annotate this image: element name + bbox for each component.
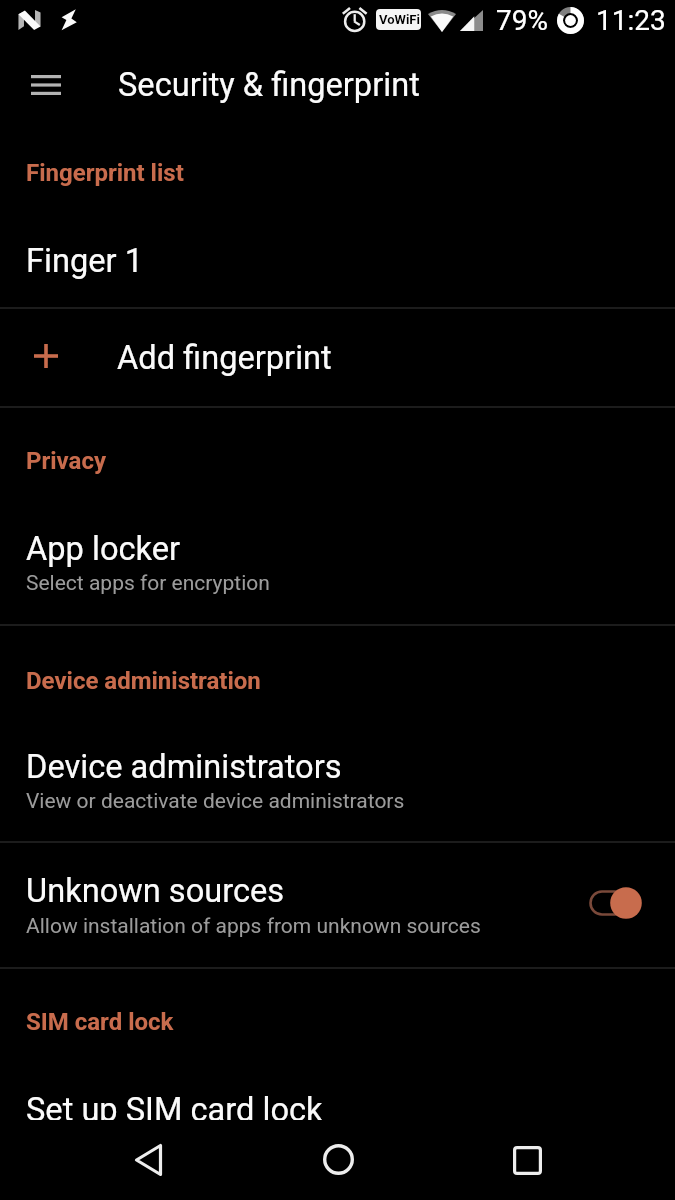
staticText: Select apps for encryption xyxy=(26,571,270,596)
staticText: Privacy xyxy=(26,447,107,475)
staticText: SIM card lock xyxy=(26,1008,174,1036)
staticText: Device administration xyxy=(26,667,261,695)
staticText: View or deactivate device administrators xyxy=(26,789,405,814)
button[interactable]: Set up SIM card lock xyxy=(0,968,675,1120)
staticText: Security & fingerprint xyxy=(118,66,420,104)
button[interactable]: Unknown sources xyxy=(0,842,675,967)
staticText: Unknown sources xyxy=(26,872,285,910)
staticText: Finger 1 xyxy=(26,242,143,280)
button[interactable]: Add fingerprint xyxy=(0,308,675,406)
button[interactable]: Device administrators xyxy=(0,625,675,841)
staticText: Fingerprint list xyxy=(26,159,184,187)
button[interactable]: Home xyxy=(298,1120,378,1200)
staticText: Device administrators xyxy=(26,748,342,786)
button[interactable]: Recent apps xyxy=(487,1120,567,1200)
staticText: App locker xyxy=(26,530,181,568)
staticText: Allow installation of apps from unknown … xyxy=(26,914,481,939)
staticText: Add fingerprint xyxy=(117,339,332,377)
staticText: VoWiFi xyxy=(379,12,420,27)
button[interactable]: Finger 1 xyxy=(0,124,675,307)
staticText: Set up SIM card lock xyxy=(26,1091,323,1129)
button[interactable]: Menu xyxy=(14,58,76,120)
button[interactable]: Back xyxy=(108,1120,188,1200)
staticText: 11:23 xyxy=(596,4,666,37)
button[interactable]: App locker xyxy=(0,407,675,624)
staticText: 79% xyxy=(496,4,548,37)
